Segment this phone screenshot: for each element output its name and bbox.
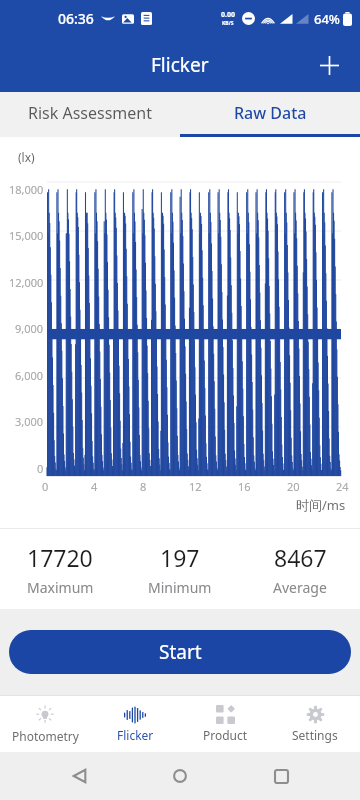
staticText: 16 bbox=[238, 479, 251, 494]
staticText: Flicker bbox=[151, 52, 209, 78]
staticText: 0 bbox=[37, 461, 44, 476]
staticText: 06:36 bbox=[58, 9, 94, 28]
staticText: 4 bbox=[91, 479, 98, 494]
staticText: Maximum bbox=[27, 578, 94, 597]
staticText: 3,000 bbox=[15, 414, 44, 429]
staticText: 0 bbox=[42, 479, 49, 494]
button[interactable]: Add measurement bbox=[306, 42, 352, 88]
staticText: 12,000 bbox=[9, 275, 44, 290]
staticText: Start bbox=[159, 639, 202, 665]
staticText: 8 bbox=[140, 479, 147, 494]
button[interactable]: Product bbox=[180, 696, 270, 752]
staticText: KB/S bbox=[222, 20, 234, 27]
staticText: Average bbox=[273, 578, 327, 597]
staticText: 6,000 bbox=[15, 368, 44, 383]
staticText: Product bbox=[203, 727, 248, 743]
staticText: 时间/ms bbox=[296, 496, 346, 514]
staticText: 17720 bbox=[27, 542, 93, 573]
button[interactable]: Start bbox=[9, 630, 351, 674]
button[interactable]: Raw Data bbox=[180, 92, 360, 134]
staticText: Settings bbox=[292, 727, 338, 743]
button[interactable]: Home bbox=[159, 755, 201, 797]
staticText: Minimum bbox=[148, 578, 212, 597]
button[interactable]: Back bbox=[59, 755, 101, 797]
staticText: 8467 bbox=[274, 542, 327, 573]
staticText: 9,000 bbox=[15, 321, 44, 336]
button[interactable]: Recent apps bbox=[260, 755, 302, 797]
staticText: 197 bbox=[160, 542, 200, 573]
staticText: Photometry bbox=[12, 728, 79, 744]
staticText: 24 bbox=[336, 479, 349, 494]
staticText: 12 bbox=[189, 479, 202, 494]
staticText: Flicker bbox=[117, 727, 154, 743]
staticText: Risk Assessment bbox=[28, 102, 153, 124]
button[interactable]: Photometry bbox=[0, 696, 90, 752]
button[interactable]: Flicker bbox=[90, 696, 180, 752]
staticText: 20 bbox=[287, 479, 300, 494]
staticText: 0.00 bbox=[221, 10, 235, 20]
staticText: 18,000 bbox=[9, 182, 44, 197]
staticText: 15,000 bbox=[9, 228, 44, 243]
staticText: Raw Data bbox=[234, 102, 307, 124]
button[interactable]: Risk Assessment bbox=[0, 92, 180, 134]
staticText: 64% bbox=[314, 10, 340, 28]
staticText: (lx) bbox=[18, 149, 35, 165]
button[interactable]: Settings bbox=[270, 696, 360, 752]
